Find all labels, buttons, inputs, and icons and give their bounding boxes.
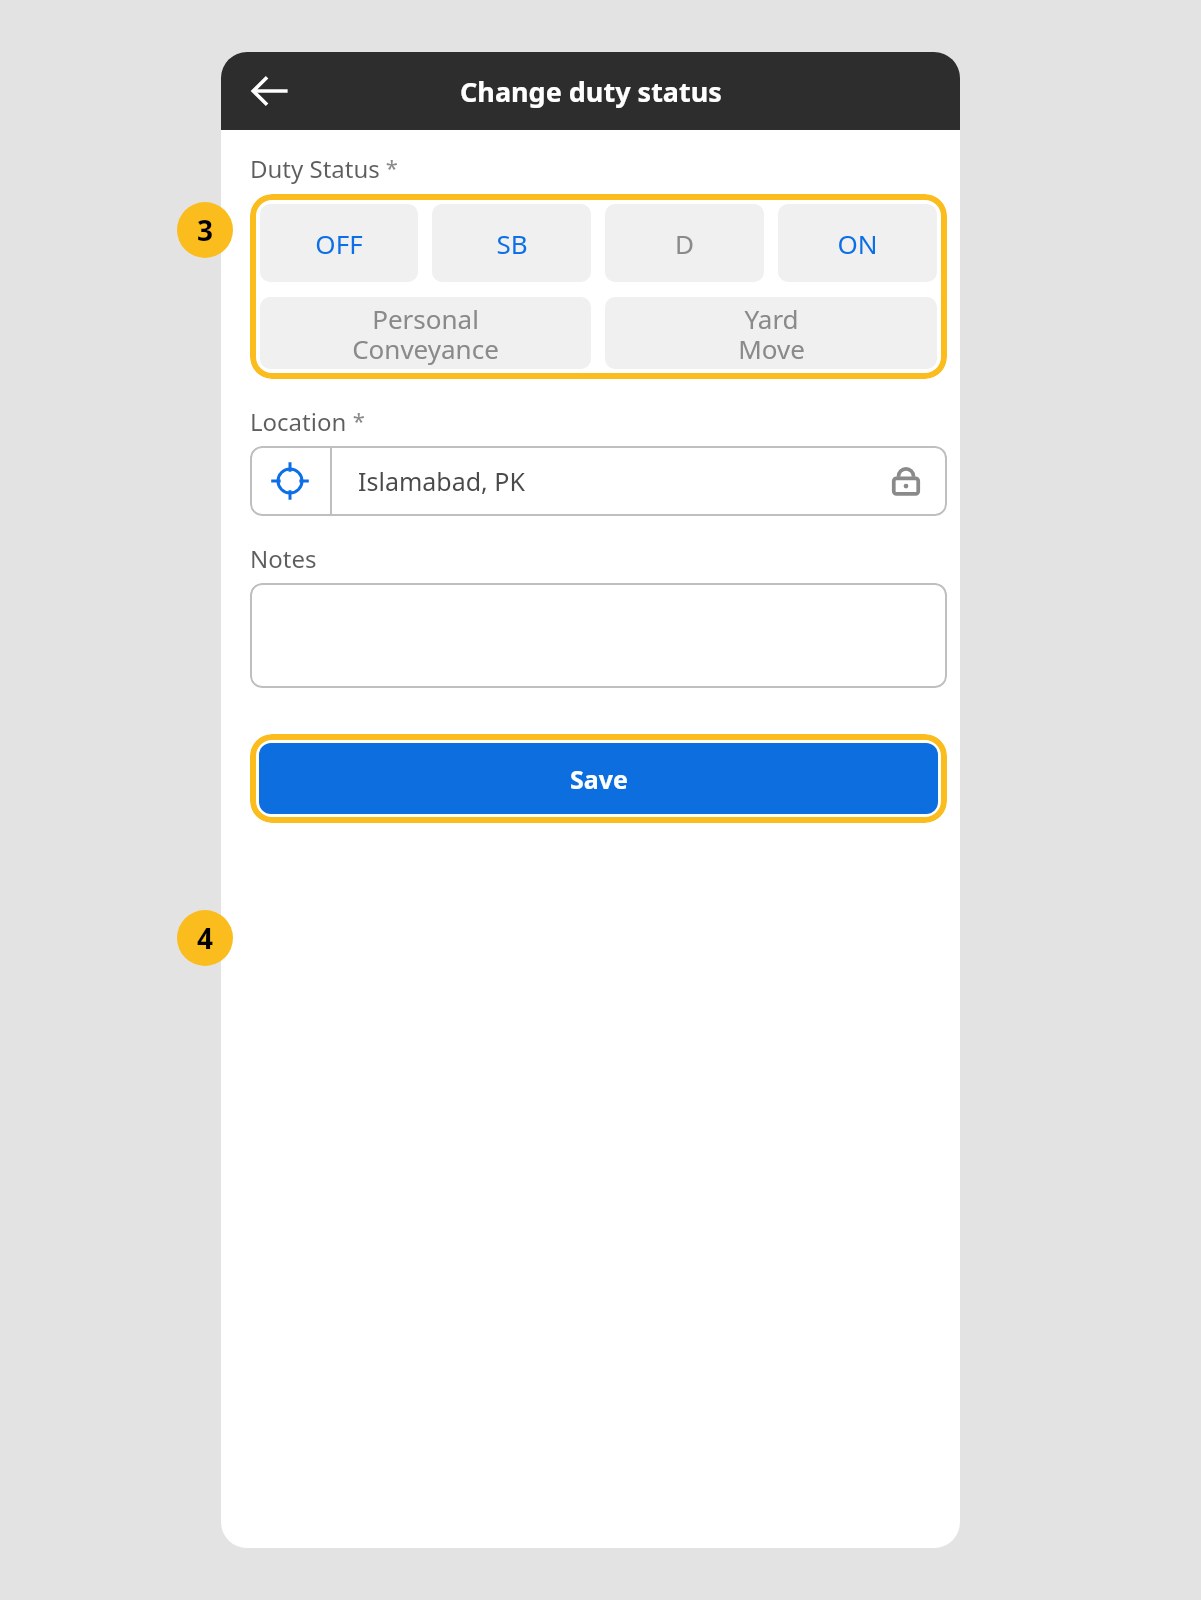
button[interactable]: SB [432, 204, 591, 282]
button[interactable]: Use current location [250, 446, 330, 516]
staticText: 4 [197, 919, 214, 957]
staticText: Notes [250, 542, 317, 575]
staticText: 3 [197, 211, 214, 249]
button[interactable]: Personal Conveyance [260, 297, 591, 369]
staticText: Islamabad, PK [358, 464, 889, 498]
button[interactable]: Yard Move [605, 297, 937, 369]
button[interactable]: ON [778, 204, 937, 282]
button[interactable]: D [605, 204, 764, 282]
button[interactable] [250, 583, 947, 688]
button[interactable]: OFF [260, 204, 418, 282]
button[interactable]: Use current location [250, 446, 947, 516]
staticText: * [347, 405, 365, 435]
staticText: Personal Conveyance [352, 301, 499, 366]
button[interactable]: Back [243, 64, 297, 118]
staticText: SB [496, 226, 528, 261]
staticText: * [380, 152, 398, 182]
other: Locked [889, 464, 923, 498]
staticText: OFF [315, 226, 363, 261]
staticText: Location [250, 405, 347, 438]
staticText: ON [837, 226, 878, 261]
staticText: Change duty status [460, 73, 722, 110]
button[interactable]: Save [259, 743, 938, 814]
staticText: D [675, 226, 694, 261]
staticText: Save [570, 762, 628, 796]
staticText: Duty Status [250, 152, 380, 185]
staticText: Yard Move [738, 301, 805, 366]
